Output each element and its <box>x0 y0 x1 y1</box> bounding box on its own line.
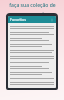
staticText: frases <box>5 14 21 21</box>
staticText: Favoritos <box>10 17 26 22</box>
button[interactable] <box>8 25 56 31</box>
button[interactable] <box>8 31 56 37</box>
button[interactable] <box>8 71 56 77</box>
button[interactable] <box>8 37 56 43</box>
button[interactable] <box>8 87 56 88</box>
button[interactable]: Favoritos <box>8 16 56 23</box>
button[interactable] <box>8 77 56 81</box>
button[interactable] <box>8 65 56 71</box>
staticText: faça sua coleção de <box>9 2 56 9</box>
button[interactable] <box>8 81 56 87</box>
button[interactable] <box>8 61 56 65</box>
staticText: mais favoritas! <box>21 10 59 24</box>
button[interactable] <box>8 43 56 49</box>
button[interactable] <box>8 49 56 55</box>
button[interactable]: More options <box>49 17 54 22</box>
button[interactable] <box>8 55 56 61</box>
